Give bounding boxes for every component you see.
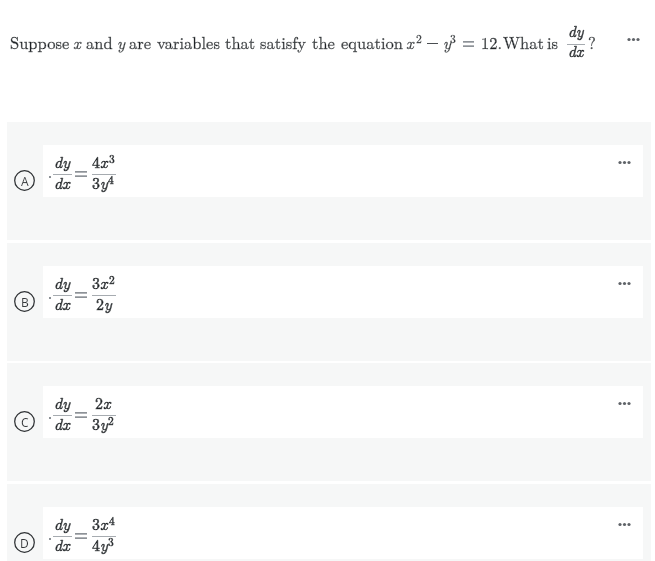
staticText: dy <box>54 512 70 535</box>
button[interactable] <box>7 363 651 481</box>
staticText: satisfy <box>260 30 307 53</box>
staticText: 2 <box>96 292 105 315</box>
staticText: A <box>21 173 29 189</box>
staticText: ? <box>588 30 596 53</box>
staticText: and <box>86 30 113 53</box>
button[interactable] <box>7 243 651 361</box>
staticText: dx <box>54 292 70 315</box>
staticText: dy <box>54 271 70 294</box>
staticText: y <box>100 412 108 435</box>
staticText: and <box>86 30 113 53</box>
staticText: dx <box>568 40 584 62</box>
staticText: y <box>117 30 126 53</box>
staticText: y <box>443 30 452 53</box>
staticText: 2 <box>108 412 114 428</box>
staticText: 12. <box>481 30 503 53</box>
staticText: x <box>73 30 81 53</box>
staticText: variables <box>157 30 220 53</box>
staticText: 4 <box>92 533 101 556</box>
staticText: dy <box>54 391 70 414</box>
staticText: 2 <box>109 271 115 287</box>
staticText: 3 <box>92 412 101 435</box>
staticText: y <box>117 30 126 53</box>
staticText: 4 <box>108 171 114 187</box>
staticText: the <box>312 30 335 53</box>
staticText: y <box>100 533 108 556</box>
staticText: equation <box>341 30 403 53</box>
staticText: y <box>100 412 108 435</box>
staticText: 2 <box>95 391 104 414</box>
staticText: dx <box>54 533 70 556</box>
button[interactable]: Choose answer B <box>14 291 35 312</box>
staticText: the <box>312 30 335 53</box>
staticText: x <box>100 150 108 173</box>
staticText: 2 <box>416 30 422 46</box>
staticText: 2 <box>108 412 114 428</box>
staticText: x <box>100 512 108 535</box>
staticText: dx <box>54 533 70 556</box>
staticText: What <box>503 30 544 53</box>
staticText: x <box>73 30 81 53</box>
staticText: dx <box>54 171 70 194</box>
staticText: 4 <box>109 512 115 528</box>
staticText: 2 <box>416 30 422 46</box>
staticText: 12. <box>481 30 503 53</box>
staticText: 3 <box>450 30 456 46</box>
staticText: 3 <box>92 271 101 294</box>
staticText: 3 <box>109 150 115 166</box>
staticText: 4 <box>92 150 101 173</box>
staticText: x <box>406 30 414 53</box>
staticText: dy <box>54 150 70 173</box>
staticText: x <box>100 150 108 173</box>
staticText: y <box>100 171 108 194</box>
staticText: equation <box>341 30 403 53</box>
staticText: dx <box>54 171 70 194</box>
staticText: y <box>100 171 108 194</box>
staticText: 4 <box>92 150 101 173</box>
staticText: 2 <box>96 292 105 315</box>
button[interactable]: More options <box>627 29 651 50</box>
staticText: x <box>406 30 414 53</box>
staticText: 2 <box>109 271 115 287</box>
staticText: dx <box>568 40 584 62</box>
button[interactable]: Option D actions <box>618 514 640 535</box>
staticText: C <box>21 414 29 430</box>
button[interactable]: Choose answer C <box>14 411 35 432</box>
staticText: x <box>100 271 108 294</box>
staticText: dx <box>54 412 70 435</box>
staticText: 3 <box>92 171 101 194</box>
staticText: y <box>443 30 452 53</box>
staticText: y <box>104 292 112 315</box>
staticText: 2 <box>95 391 104 414</box>
staticText: Suppose <box>10 30 70 53</box>
button[interactable]: Option C actions <box>618 393 640 414</box>
staticText: 3 <box>92 512 101 535</box>
staticText: 3 <box>92 512 101 535</box>
button[interactable]: Choose answer A <box>14 170 35 191</box>
staticText: satisfy <box>260 30 307 53</box>
staticText: variables <box>157 30 220 53</box>
staticText: x <box>100 512 108 535</box>
staticText: dy <box>568 20 584 42</box>
staticText: dx <box>54 292 70 315</box>
staticText: that <box>225 30 256 53</box>
staticText: y <box>100 533 108 556</box>
button[interactable]: Choose answer D <box>14 532 35 553</box>
button[interactable] <box>7 122 651 240</box>
staticText: ? <box>588 30 596 53</box>
staticText: y <box>104 292 112 315</box>
staticText: What <box>503 30 544 53</box>
button[interactable]: Option B actions <box>618 273 640 294</box>
button[interactable]: Option A actions <box>618 152 640 173</box>
staticText: is <box>547 30 559 53</box>
staticText: dx <box>54 412 70 435</box>
staticText: dy <box>54 391 70 414</box>
staticText: D <box>20 535 29 551</box>
staticText: 3 <box>92 271 101 294</box>
button[interactable] <box>7 484 651 561</box>
staticText: 4 <box>108 171 114 187</box>
staticText: 3 <box>108 533 114 549</box>
staticText: are <box>129 30 152 53</box>
staticText: dy <box>54 271 70 294</box>
staticText: 3 <box>92 412 101 435</box>
